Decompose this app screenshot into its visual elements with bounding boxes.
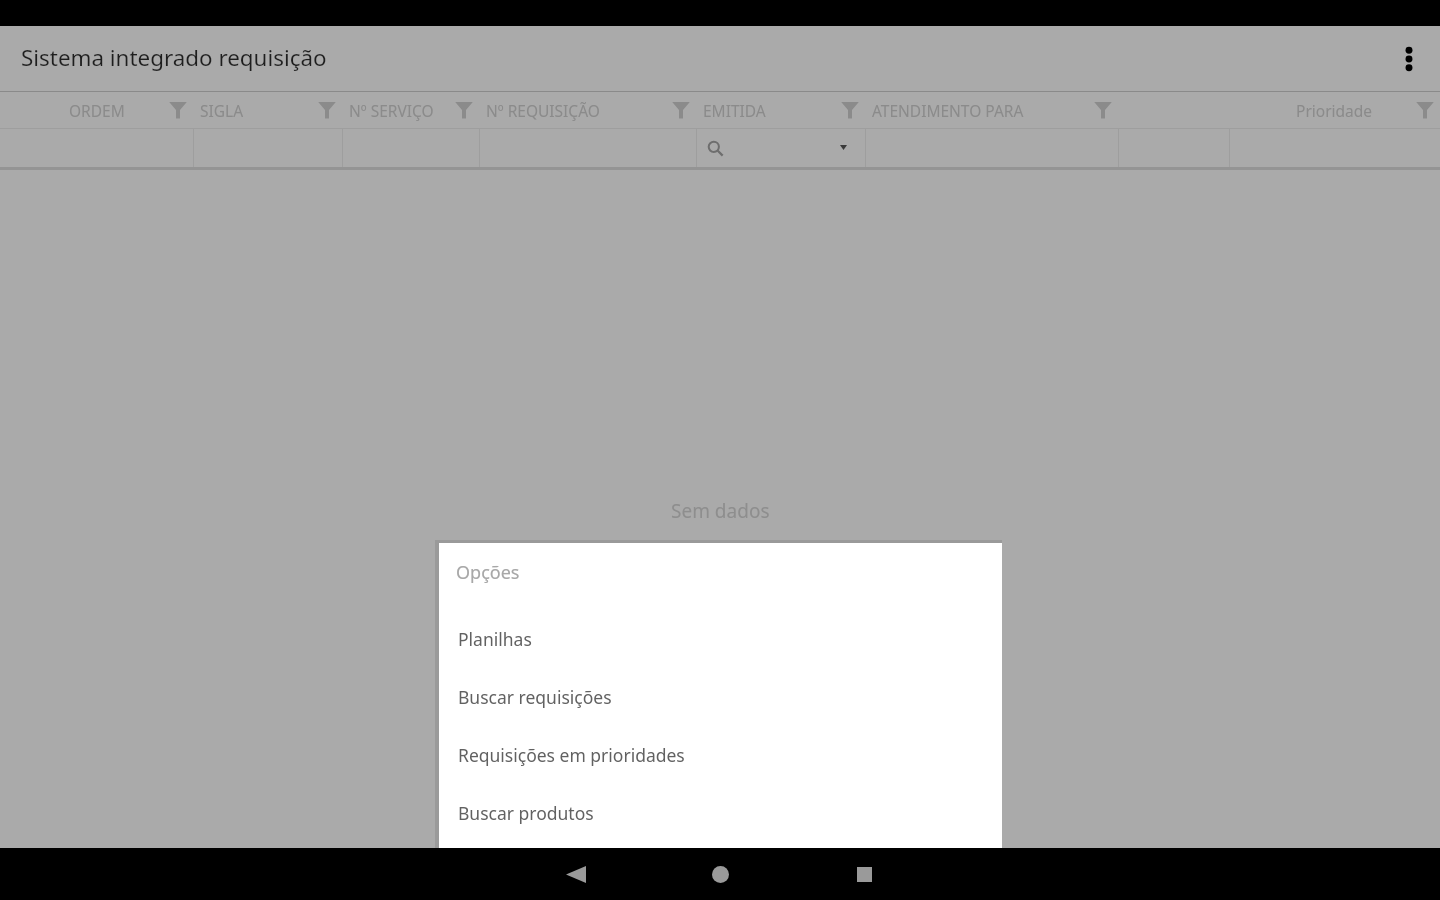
- button[interactable]: Planilhas: [439, 610, 1002, 668]
- staticText: ATENDIMENTO PARA: [872, 100, 1024, 121]
- button[interactable]: Filter Nº SERVIÇO: [451, 92, 479, 128]
- staticText: Sem dados: [671, 498, 770, 524]
- staticText: SIGLA: [200, 100, 244, 121]
- button[interactable]: More options: [1378, 26, 1440, 92]
- staticText: Nº SERVIÇO: [349, 100, 434, 121]
- staticText: ORDEM: [69, 100, 125, 121]
- button[interactable]: Filter SIGLA: [314, 92, 342, 128]
- button[interactable]: Filter ORDEM: [165, 92, 193, 128]
- button[interactable]: Buscar requisições: [439, 668, 1002, 726]
- button[interactable]: Back: [504, 848, 648, 900]
- button[interactable]: ATENDIMENTO PARA: [865, 92, 1118, 128]
- staticText: Planilhas: [458, 627, 532, 651]
- button[interactable]: Filter Nº REQUISIÇÃO: [668, 92, 696, 128]
- staticText: Nº REQUISIÇÃO: [486, 100, 600, 121]
- button[interactable]: Nº REQUISIÇÃO: [479, 92, 696, 128]
- button[interactable]: ORDEM: [0, 92, 193, 128]
- staticText: Requisições em prioridades: [458, 743, 685, 767]
- button[interactable]: Recents: [792, 848, 936, 900]
- button[interactable]: Filter Prioridade: [1412, 92, 1440, 128]
- staticText: Sistema integrado requisição: [21, 42, 327, 73]
- button[interactable]: Buscar produtos: [439, 784, 1002, 842]
- staticText: EMITIDA: [703, 100, 766, 121]
- button[interactable]: SIGLA: [193, 92, 342, 128]
- staticText: Buscar produtos: [458, 801, 594, 825]
- staticText: Opções: [456, 560, 520, 585]
- button[interactable]: Requisições em prioridades: [439, 726, 1002, 784]
- button[interactable]: Filter ATENDIMENTO PARA: [1090, 92, 1118, 128]
- staticText: Buscar requisições: [458, 685, 612, 709]
- button[interactable]: Filter EMITIDA: [837, 92, 865, 128]
- staticText: Prioridade: [1296, 100, 1373, 121]
- button[interactable]: EMITIDA: [696, 92, 865, 128]
- button[interactable]: Nº SERVIÇO: [342, 92, 479, 128]
- button[interactable]: Home: [648, 848, 792, 900]
- button[interactable]: Prioridade: [1229, 92, 1440, 128]
